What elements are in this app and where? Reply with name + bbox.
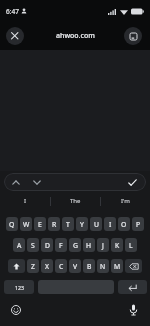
button[interactable]: F	[55, 238, 67, 252]
button[interactable]	[9, 303, 23, 317]
button[interactable]	[126, 303, 140, 317]
staticText: E	[38, 220, 42, 229]
button[interactable]: T	[62, 217, 74, 231]
staticText: M	[114, 262, 121, 271]
staticText: D	[45, 241, 50, 250]
button[interactable]: Q	[6, 217, 18, 231]
button[interactable]: Z	[27, 259, 39, 273]
staticText: Y	[80, 220, 84, 229]
button[interactable]: K	[111, 238, 123, 252]
staticText: A	[17, 241, 22, 250]
staticText: X	[45, 262, 49, 271]
staticText: F	[59, 241, 63, 250]
staticText: C	[59, 262, 64, 271]
staticText: G	[73, 241, 78, 250]
button[interactable]: M	[111, 259, 123, 273]
button[interactable]: S	[27, 238, 39, 252]
button[interactable]: I	[0, 193, 50, 209]
button[interactable]	[6, 27, 24, 45]
staticText: Q	[9, 220, 15, 229]
button[interactable]: R	[48, 217, 60, 231]
button[interactable]: N	[97, 259, 109, 273]
button[interactable]	[28, 173, 46, 191]
button[interactable]: 123	[4, 280, 34, 294]
staticText: T	[66, 220, 70, 229]
button[interactable]	[118, 173, 146, 191]
button[interactable]: I'm	[101, 193, 150, 209]
button[interactable]: H	[83, 238, 95, 252]
button[interactable]	[4, 173, 28, 191]
staticText: N	[100, 262, 106, 271]
staticText: L	[129, 241, 133, 250]
button[interactable]: L	[125, 238, 137, 252]
staticText: I	[109, 220, 112, 229]
staticText: V	[73, 262, 78, 271]
button[interactable]	[125, 259, 142, 273]
button[interactable]: I	[104, 217, 116, 231]
button[interactable]: V	[69, 259, 81, 273]
button[interactable]: The	[51, 193, 100, 209]
staticText: W	[23, 220, 30, 229]
staticText: P	[136, 220, 141, 229]
button[interactable]: X	[41, 259, 53, 273]
button[interactable]: Y	[76, 217, 88, 231]
button[interactable]	[8, 259, 25, 273]
staticText: The	[70, 197, 81, 205]
staticText: R	[52, 220, 57, 229]
button[interactable]: A	[13, 238, 25, 252]
staticText: S	[31, 241, 35, 250]
staticText: 6:47	[6, 7, 19, 16]
button[interactable]: C	[55, 259, 67, 273]
button[interactable]: U	[90, 217, 102, 231]
staticText: I	[24, 197, 27, 205]
button[interactable]: W	[20, 217, 32, 231]
button[interactable]: D	[41, 238, 53, 252]
button[interactable]	[118, 280, 147, 294]
staticText: O	[121, 220, 127, 229]
button[interactable]: E	[34, 217, 46, 231]
staticText: B	[87, 262, 92, 271]
button[interactable]: O	[118, 217, 130, 231]
staticText: Z	[31, 262, 35, 271]
staticText: J	[102, 241, 104, 250]
staticText: I'm	[121, 197, 130, 205]
staticText: H	[86, 241, 92, 250]
staticText: U	[94, 220, 99, 229]
button[interactable]: J	[97, 238, 109, 252]
button[interactable]: P	[132, 217, 144, 231]
button[interactable]: B	[83, 259, 95, 273]
staticText: 123	[15, 284, 24, 291]
button[interactable]	[124, 27, 142, 45]
staticText: ahwoo.com	[56, 31, 95, 41]
staticText: K	[115, 241, 120, 250]
button[interactable]: G	[69, 238, 81, 252]
